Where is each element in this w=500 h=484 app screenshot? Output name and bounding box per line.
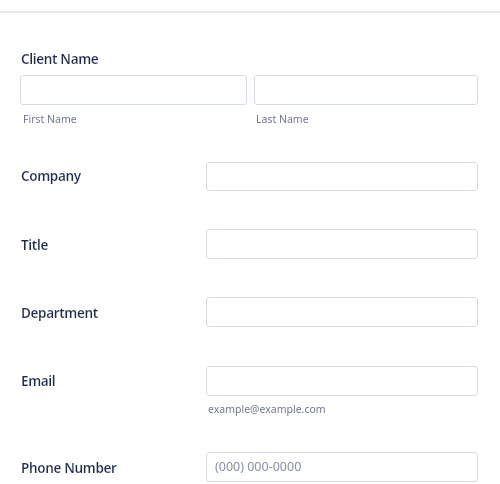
staticText: (000) 000-0000 [215, 458, 302, 475]
button[interactable] [206, 297, 478, 327]
staticText: Client Name [21, 50, 99, 68]
staticText: Company [21, 167, 81, 185]
staticText: Last Name [256, 112, 309, 126]
staticText: First Name [23, 112, 77, 126]
staticText: example@example.com [208, 402, 326, 416]
button[interactable] [20, 75, 247, 105]
staticText: Email [21, 372, 56, 390]
button[interactable] [206, 229, 478, 259]
staticText: Title [21, 236, 48, 254]
button[interactable] [206, 366, 478, 396]
button[interactable] [206, 162, 478, 191]
button[interactable] [206, 452, 478, 482]
staticText: Phone Number [21, 459, 117, 477]
button[interactable] [254, 75, 478, 105]
staticText: Department [21, 304, 98, 322]
